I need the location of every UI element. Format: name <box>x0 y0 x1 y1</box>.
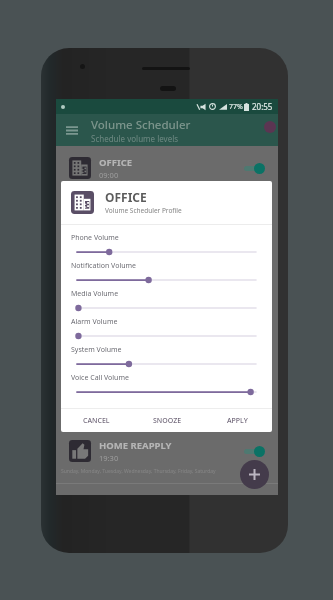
staticText: Schedule volume levels <box>91 133 179 144</box>
staticText: 19:30 <box>99 453 119 463</box>
staticText: 77% <box>229 102 243 112</box>
staticText: System Volume <box>71 345 122 355</box>
button[interactable]: Profile <box>264 121 276 133</box>
staticText: Notification Volume <box>71 261 137 271</box>
staticText: Media Volume <box>71 289 119 299</box>
button[interactable]: APPLY <box>202 409 272 432</box>
button[interactable]: Enable schedule <box>243 160 271 176</box>
staticText: OFFICE <box>99 156 133 169</box>
staticText: Volume Scheduler <box>91 117 191 133</box>
staticText: Alarm Volume <box>71 317 118 327</box>
button[interactable]: Add schedule <box>240 460 269 489</box>
button[interactable]: CANCEL <box>61 409 132 432</box>
button[interactable]: Open navigation drawer <box>58 114 86 146</box>
staticText: 09:00 <box>99 170 119 180</box>
staticText: Sunday, Monday, Tuesday, Wednesday, Thur… <box>61 468 216 475</box>
staticText: APPLY <box>227 416 248 426</box>
button[interactable]: Enable schedule <box>243 443 271 459</box>
staticText: HOME REAPPLY <box>99 439 172 452</box>
staticText: Volume Scheduler Profile <box>105 206 182 215</box>
button[interactable]: HOME REAPPLY <box>56 435 278 467</box>
staticText: 20:55 <box>252 101 273 112</box>
staticText: SNOOZE <box>153 416 182 426</box>
staticText: Phone Volume <box>71 233 119 243</box>
staticText: CANCEL <box>83 416 110 426</box>
staticText: OFFICE <box>105 189 147 205</box>
button[interactable]: OFFICE <box>56 152 278 184</box>
button[interactable]: SNOOZE <box>132 409 202 432</box>
staticText: Voice Call Volume <box>71 373 129 383</box>
